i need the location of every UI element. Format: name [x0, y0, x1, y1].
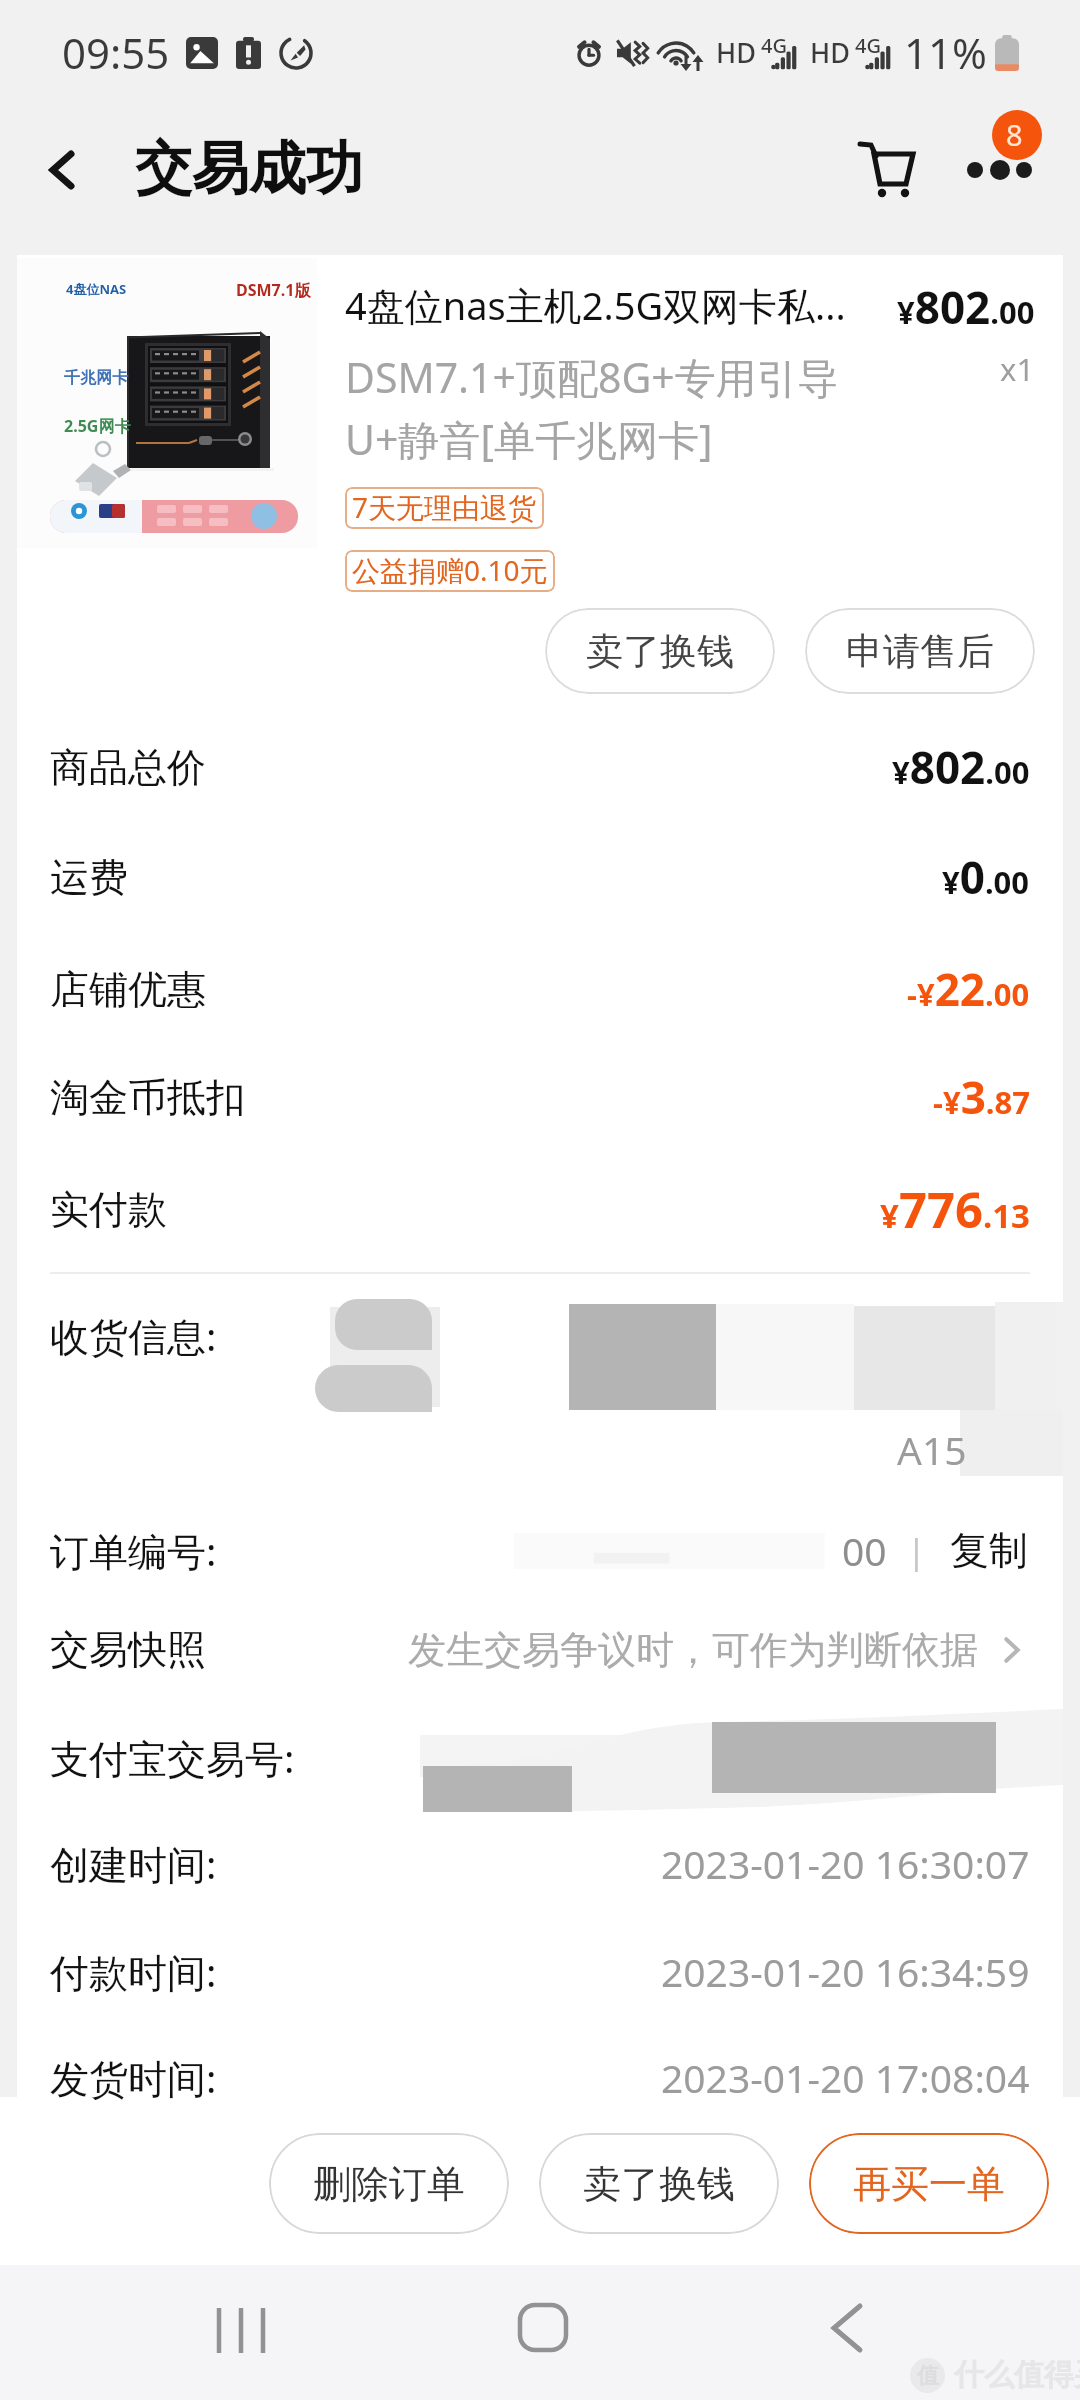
staticText: 运费: [50, 853, 128, 902]
staticText: 发生交易争议时，可作为判断依据: [408, 1626, 978, 1674]
staticText: 支付宝交易号:: [50, 1731, 295, 1784]
staticText: 卖了换钱: [586, 628, 734, 675]
staticText: 订单编号:: [50, 1524, 217, 1577]
staticText: 7天无理由退货: [352, 488, 537, 526]
staticText: DSM7.1版: [236, 279, 311, 301]
staticText: 再买一单: [853, 2160, 1005, 2208]
staticText: 00: [842, 1524, 887, 1577]
staticText: |: [907, 1528, 926, 1574]
staticText: ¥802.00: [897, 277, 1035, 337]
button[interactable]: 再买一单: [809, 2133, 1049, 2234]
staticText: 交易成功: [135, 133, 363, 205]
staticText: 2023-01-20 16:30:07: [661, 1837, 1030, 1890]
staticText: 09:55: [62, 24, 170, 81]
staticText: 卖了换钱: [583, 2160, 735, 2208]
staticText: 2023-01-20 17:08:04: [661, 2051, 1030, 2104]
staticText: 复制: [950, 1526, 1028, 1575]
staticText: DSM7.1+顶配8G+专用引导U+静音[单千兆网卡]: [345, 349, 840, 467]
staticText: -¥3.87: [933, 1067, 1030, 1127]
staticText: 值: [917, 2362, 939, 2390]
staticText: 店铺优惠: [50, 965, 206, 1014]
button[interactable]: Recent apps: [176, 2262, 306, 2392]
staticText: 交易快照: [50, 1625, 206, 1674]
staticText: 千兆网卡: [64, 368, 128, 388]
staticText: 商品总价: [50, 743, 206, 792]
staticText: 2.5G网卡: [64, 415, 131, 437]
button[interactable]: 复制: [946, 1518, 1030, 1583]
button[interactable]: 卖了换钱: [539, 2133, 779, 2234]
staticText: 什么值得买: [954, 2356, 1080, 2394]
staticText: 公益捐赠0.10元: [352, 551, 548, 589]
staticText: 淘金币抵扣: [50, 1073, 245, 1122]
staticText: HD: [716, 34, 756, 71]
staticText: 4盘位NAS: [66, 280, 127, 298]
staticText: 实付款: [50, 1185, 167, 1234]
button[interactable]: More options: [952, 105, 1080, 255]
button[interactable]: 申请售后: [805, 608, 1035, 694]
staticText: 2023-01-20 16:34:59: [661, 1945, 1030, 1998]
staticText: 申请售后: [846, 628, 994, 675]
button[interactable]: 交易快照: [50, 1602, 1030, 1697]
staticText: 4G: [855, 32, 881, 59]
staticText: ¥802.00: [892, 737, 1030, 797]
button[interactable]: 卖了换钱: [545, 608, 775, 694]
staticText: A15: [897, 1423, 967, 1476]
staticText: 11%: [904, 24, 987, 81]
button[interactable]: Back: [0, 105, 135, 255]
staticText: ¥776.13: [880, 1176, 1030, 1243]
staticText: 创建时间:: [50, 1837, 217, 1890]
staticText: 付款时间:: [50, 1945, 217, 1998]
button[interactable]: Home: [478, 2262, 608, 2392]
button[interactable]: 删除订单: [269, 2133, 509, 2234]
button[interactable]: Shopping cart: [836, 105, 952, 255]
staticText: 发货时间:: [50, 2051, 217, 2104]
staticText: 收货信息:: [50, 1309, 217, 1362]
staticText: x1: [1000, 348, 1035, 390]
staticText: 8: [1006, 115, 1023, 154]
staticText: ¥0.00: [942, 847, 1030, 907]
button[interactable]: Back: [781, 2262, 911, 2392]
staticText: 删除订单: [313, 2160, 465, 2208]
staticText: 4G: [761, 32, 787, 59]
staticText: -¥22.00: [907, 959, 1030, 1019]
staticText: HD: [810, 34, 850, 71]
staticText: 4盘位nas主机2.5G双网卡私...: [345, 279, 846, 331]
